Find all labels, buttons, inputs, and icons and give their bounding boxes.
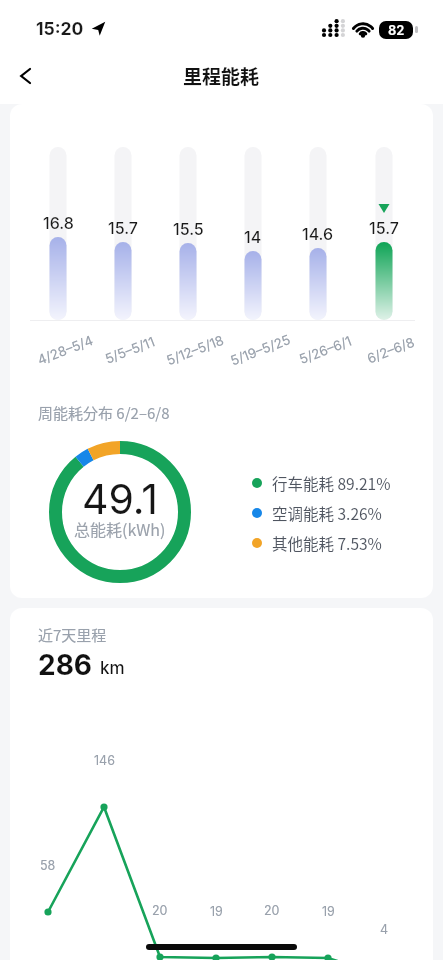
staticText: 总能耗(kWh) xyxy=(74,517,166,540)
staticText: 15:20 xyxy=(36,18,84,39)
staticText: 286 xyxy=(38,648,93,682)
staticText: 空调能耗 3.26% xyxy=(272,502,382,524)
staticText: km xyxy=(100,658,125,679)
button[interactable]: 空调能耗 3.26% xyxy=(252,502,382,524)
button[interactable]: 行车能耗 89.21% xyxy=(252,472,391,494)
staticText: 行车能耗 89.21% xyxy=(272,472,391,494)
staticText: 其他能耗 7.53% xyxy=(272,532,382,554)
staticText: 里程能耗 xyxy=(183,62,260,90)
staticText: 周能耗分布 6/2–6/8 xyxy=(38,402,170,424)
staticText: 4 xyxy=(380,922,389,937)
staticText: 5/19–5/25 xyxy=(228,331,293,369)
button[interactable] xyxy=(6,58,44,94)
staticText: 5/12–5/18 xyxy=(164,332,226,368)
staticText: 19 xyxy=(322,904,335,919)
staticText: 5/26–6/1 xyxy=(297,332,354,367)
staticText: 15.5 xyxy=(173,219,204,238)
staticText: 49.1 xyxy=(82,474,158,524)
staticText: 15.7 xyxy=(369,218,399,237)
staticText: 19 xyxy=(210,904,223,919)
button[interactable]: 其他能耗 7.53% xyxy=(252,532,382,554)
staticText: 14 xyxy=(244,227,262,246)
staticText: 5/5–5/11 xyxy=(103,333,157,367)
staticText: 6/2–6/8 xyxy=(365,334,417,366)
staticText: 20 xyxy=(264,903,280,918)
staticText: 146 xyxy=(94,753,115,768)
staticText: 15.7 xyxy=(108,218,138,237)
staticText: 14.6 xyxy=(302,224,334,243)
staticText: 82 xyxy=(388,22,405,38)
staticText: 20 xyxy=(152,903,168,918)
staticText: 4/28–5/4 xyxy=(35,332,96,368)
staticText: 近7天里程 xyxy=(38,624,107,646)
staticText: 16.8 xyxy=(43,213,74,232)
staticText: 58 xyxy=(40,858,56,873)
